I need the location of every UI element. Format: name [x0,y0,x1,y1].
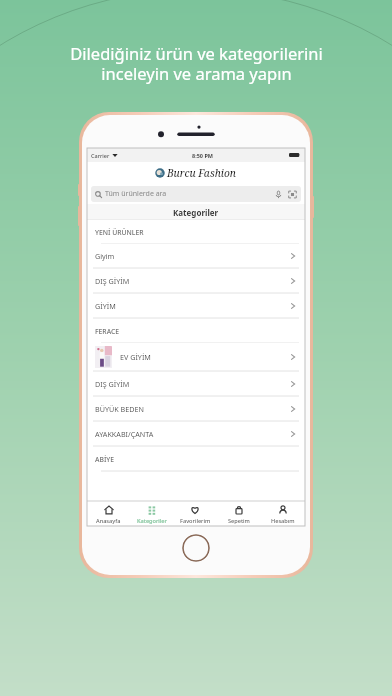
staticText: ABİYE [95,455,115,464]
staticText: 8:50 PM [192,152,214,159]
button[interactable]: DIŞ GİYİM [87,269,305,293]
button[interactable]: Tüm ürünlerde ara [91,186,301,202]
staticText: Burcu Fashion [167,166,237,180]
button[interactable]: Giyim [87,244,305,268]
staticText: Kategoriler [137,517,167,525]
staticText: DIŞ GİYİM [95,379,130,389]
staticText: Favorilerim [180,517,211,525]
staticText: Carrier [91,152,110,159]
button[interactable]: Favorilerim [173,502,217,526]
button[interactable]: DIŞ GİYİM [87,372,305,396]
button[interactable]: Kategoriler [130,502,173,526]
staticText: DIŞ GİYİM [95,276,130,286]
button[interactable]: GİYİM [87,294,305,318]
button[interactable]: Sepetim [217,502,261,526]
staticText: EV GİYİM [120,352,151,362]
button[interactable]: Hesabım [261,502,305,526]
staticText: GİYİM [95,301,116,311]
staticText: Anasayfa [96,517,121,525]
button[interactable]: Barkod tara [288,190,297,199]
button[interactable]: BÜYÜK BEDEN [87,397,305,421]
staticText: Kategoriler [173,207,219,218]
staticText: YENİ ÜRÜNLER [95,228,144,237]
staticText: BÜYÜK BEDEN [95,404,144,414]
button[interactable]: AYAKKABI/ÇANTA [87,422,305,446]
staticText: Hesabım [271,517,295,525]
staticText: Dilediğiniz ürün ve kategorilerini incel… [70,42,323,85]
staticText: Sepetim [228,517,250,525]
staticText: Giyim [95,251,115,261]
button[interactable]: Anasayfa [87,502,130,526]
button[interactable]: Sesli arama [274,190,283,199]
staticText: AYAKKABI/ÇANTA [95,429,154,439]
staticText: FERACE [95,327,120,336]
button[interactable]: EV GİYİM [87,343,305,371]
staticText: Tüm ürünlerde ara [105,189,167,199]
